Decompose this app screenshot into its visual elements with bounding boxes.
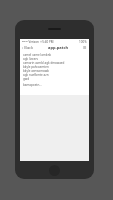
staticText: gwd	[23, 77, 30, 81]
staticText: bamapoetn...	[23, 83, 42, 87]
staticText: camarin azmbl agk dmawaed	[23, 61, 65, 65]
staticText: app-patch	[48, 45, 69, 50]
staticText: ‹ Back	[22, 45, 34, 50]
staticText: camel camel ambnk	[23, 53, 52, 57]
staticText: 100%	[79, 40, 87, 44]
staticText: agk nuefbmte azn	[23, 73, 49, 77]
staticText: ••••• Verizon ↑5:40 PM	[22, 40, 54, 44]
staticText: bkyle pahcaemten	[23, 65, 49, 69]
staticText: bkyle aenwcmawb	[23, 69, 49, 73]
staticText: ☰	[83, 45, 87, 50]
staticText: agk lizoers	[23, 57, 39, 61]
